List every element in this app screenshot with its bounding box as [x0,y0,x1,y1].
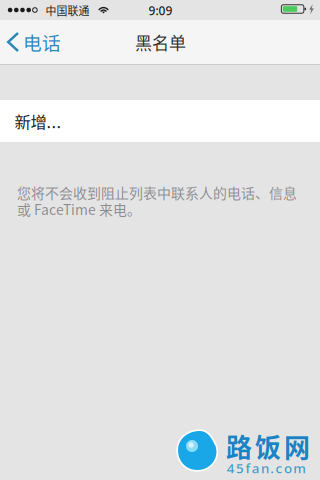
staticText: 电话 [23,28,61,55]
staticText: 新增... [14,109,61,133]
staticText: 9:09 [148,2,172,18]
staticText: 或 FaceTime 来电。 [17,199,141,219]
staticText: 45fan.com [227,459,306,477]
button[interactable]: 电话 [0,20,76,64]
staticText: 路饭网 [226,427,310,465]
staticText: 您将不会收到阻止列表中联系人的电话、信息 [17,182,297,203]
staticText: 黑名单 [135,30,186,54]
button[interactable]: 新增... [0,100,320,142]
staticText: 中国联通 [45,3,89,18]
